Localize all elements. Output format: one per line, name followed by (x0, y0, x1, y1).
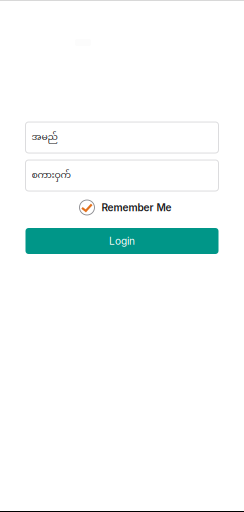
staticText: အမည် (31, 131, 57, 144)
button[interactable]: Login (25, 228, 218, 254)
button[interactable]: Remember Me (72, 200, 171, 215)
staticText: Remember Me (101, 201, 171, 214)
staticText: စကားဝှက် (31, 169, 70, 182)
staticText: Login (109, 235, 135, 247)
